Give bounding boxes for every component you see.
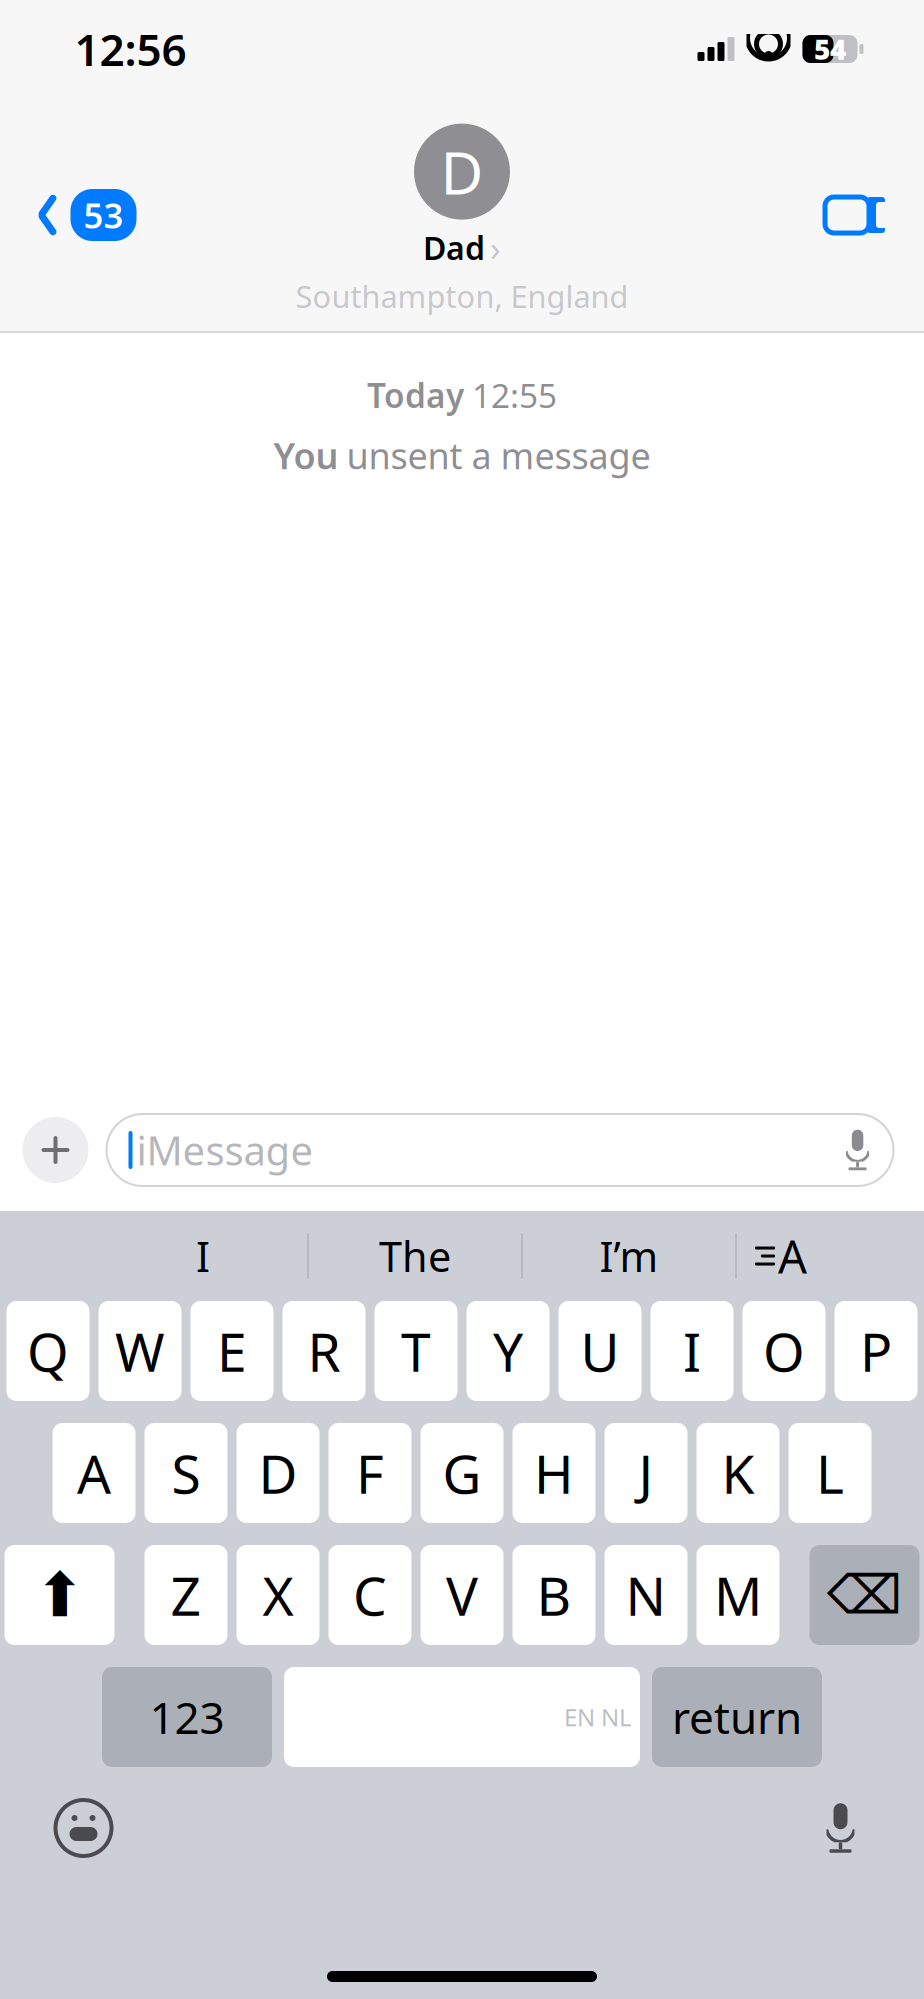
staticText: I [196, 1229, 210, 1283]
button[interactable]: H [512, 1423, 595, 1523]
button[interactable]: FaceTime [807, 181, 903, 249]
staticText: ⬆ [34, 1560, 85, 1630]
button[interactable]: A [52, 1423, 135, 1523]
button[interactable]: return [652, 1667, 822, 1767]
staticText: The [379, 1229, 451, 1283]
staticText: N [625, 1560, 666, 1630]
button[interactable]: Back to 53 conversations [20, 177, 150, 253]
button[interactable]: D [236, 1423, 319, 1523]
staticText: U [580, 1316, 619, 1386]
button[interactable]: Q [6, 1301, 89, 1401]
button[interactable]: J [604, 1423, 687, 1523]
button[interactable]: Dictation [795, 1783, 885, 1873]
staticText: Y [493, 1316, 523, 1386]
button[interactable]: N [604, 1545, 687, 1645]
button[interactable]: R [282, 1301, 365, 1401]
button[interactable]: I [99, 1220, 307, 1292]
button[interactable]: The [309, 1220, 521, 1292]
button[interactable]: Emoji [38, 1783, 128, 1873]
button[interactable]: E [190, 1301, 273, 1401]
button[interactable]: Delete [809, 1545, 919, 1645]
button[interactable]: L [788, 1423, 871, 1523]
button[interactable]: O [742, 1301, 825, 1401]
staticText: B [536, 1560, 571, 1630]
button[interactable]: Y [466, 1301, 549, 1401]
button[interactable]: F [328, 1423, 411, 1523]
staticText: ⌫ [827, 1565, 902, 1625]
staticText: Q [27, 1316, 69, 1386]
staticText: I [683, 1316, 701, 1386]
button[interactable]: Z [144, 1545, 227, 1645]
staticText: T [401, 1316, 431, 1386]
staticText: You [273, 431, 338, 479]
staticText: EN NL [564, 1701, 632, 1733]
staticText: C [353, 1560, 387, 1630]
button[interactable]: T [374, 1301, 457, 1401]
button[interactable]: C [328, 1545, 411, 1645]
staticText: Southampton, England [295, 276, 628, 316]
staticText: return [672, 1688, 802, 1746]
staticText: 53 [83, 192, 123, 238]
staticText: F [356, 1438, 384, 1508]
staticText: R [307, 1316, 340, 1386]
staticText: unsent a message [346, 431, 650, 479]
staticText: I’m [599, 1229, 658, 1283]
staticText: A [77, 1438, 111, 1508]
staticText: K [721, 1438, 754, 1508]
button[interactable]: U [558, 1301, 641, 1401]
staticText: iMessage [136, 1123, 313, 1176]
staticText: J [638, 1438, 653, 1508]
staticText: 12:55 [472, 373, 557, 417]
staticText: D [440, 133, 483, 211]
staticText: A [778, 1226, 807, 1286]
staticText: Today [367, 373, 464, 417]
staticText: O [763, 1316, 805, 1386]
staticText: G [442, 1438, 481, 1508]
staticText: V [446, 1560, 478, 1630]
button[interactable]: I [650, 1301, 733, 1401]
button[interactable]: P [834, 1301, 917, 1401]
staticText: L [816, 1438, 844, 1508]
staticText: 12:56 [74, 20, 186, 78]
button[interactable]: S [144, 1423, 227, 1523]
staticText: D [258, 1438, 297, 1508]
staticText: Z [170, 1560, 201, 1630]
button[interactable]: K [696, 1423, 779, 1523]
staticText: 123 [149, 1688, 224, 1746]
staticText: P [860, 1316, 892, 1386]
staticText: M [714, 1560, 762, 1630]
button[interactable]: M [696, 1545, 779, 1645]
staticText: Dad [423, 226, 485, 269]
button[interactable]: Message field [106, 1114, 893, 1186]
staticText: 54 [814, 30, 846, 68]
button[interactable]: I’m [523, 1220, 735, 1292]
staticText: E [217, 1316, 247, 1386]
staticText: S [171, 1438, 200, 1508]
button[interactable]: 123 [102, 1667, 272, 1767]
staticText: W [115, 1316, 165, 1386]
button[interactable]: B [512, 1545, 595, 1645]
staticText: H [534, 1438, 574, 1508]
button[interactable]: X [236, 1545, 319, 1645]
button[interactable]: W [98, 1301, 181, 1401]
staticText: X [262, 1560, 293, 1630]
button[interactable]: V [420, 1545, 503, 1645]
button[interactable]: Space [284, 1667, 640, 1767]
button[interactable]: Add attachment [22, 1117, 88, 1183]
staticText: › [490, 225, 501, 271]
button[interactable]: Text formatting [737, 1220, 825, 1292]
button[interactable]: G [420, 1423, 503, 1523]
button[interactable]: Shift [4, 1545, 114, 1645]
